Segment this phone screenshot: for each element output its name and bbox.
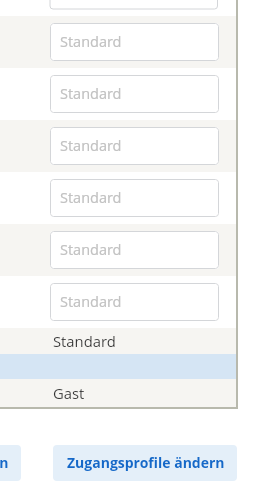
button[interactable]: Text field (50, 75, 219, 113)
button[interactable]: Text field (50, 231, 219, 269)
staticText: Standard (60, 240, 122, 260)
staticText: Standard (60, 188, 122, 208)
button[interactable]: Speichern (0, 445, 21, 481)
staticText: Speichern (0, 453, 9, 472)
button[interactable]: Text field (50, 23, 219, 61)
button[interactable]: Gast (0, 379, 236, 407)
staticText: Standard (53, 331, 116, 351)
button[interactable]: Text field (50, 283, 219, 321)
staticText: Zugangsprofile ändern (67, 453, 225, 472)
button[interactable]: Text field (0, 0, 236, 16)
button[interactable]: Zugangsprofile ändern (53, 445, 237, 481)
button[interactable]: Text field (50, 179, 219, 217)
staticText: Standard (60, 292, 122, 312)
staticText: Standard (60, 84, 122, 104)
staticText: Gast (53, 383, 85, 403)
button[interactable]: Text field (50, 127, 219, 165)
button[interactable]: Standard (0, 328, 236, 354)
staticText: Standard (60, 136, 122, 156)
staticText: Standard (60, 32, 122, 52)
